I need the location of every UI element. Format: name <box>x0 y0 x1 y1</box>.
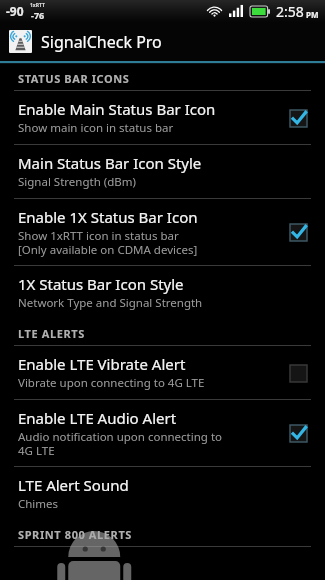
staticText: Enable Main Status Bar Icon <box>18 99 216 119</box>
staticText: 2:58 <box>276 2 304 21</box>
staticText: STATUS BAR ICONS <box>18 71 130 86</box>
button[interactable]: Enable Main Status Bar Icon <box>0 91 325 144</box>
button[interactable]: Enable LTE Audio Alert <box>0 400 325 466</box>
staticText: Signal Strength (dBm) <box>18 174 136 190</box>
staticText: Chimes <box>18 496 59 512</box>
staticText: Vibrate upon connecting to 4G LTE <box>18 375 205 391</box>
button[interactable]: LTE Alert Sound <box>0 467 325 520</box>
staticText: -76 <box>31 9 45 21</box>
staticText: Show main icon in status bar <box>18 120 174 136</box>
staticText: 1X Status Bar Icon Style <box>18 274 184 294</box>
staticText: Enable LTE Audio Alert <box>18 408 177 428</box>
staticText: LTE ALERTS <box>18 326 85 341</box>
staticText: SPRINT 800 ALERTS <box>18 527 133 542</box>
button[interactable]: Checked <box>285 219 311 245</box>
staticText: Enable 1X Status Bar Icon <box>18 207 198 227</box>
button[interactable]: Enable 1X Status Bar Icon <box>0 199 325 265</box>
button[interactable]: Unchecked <box>285 360 311 386</box>
staticText: Network Type and Signal Strength <box>18 295 203 311</box>
staticText: Audio notification upon connecting to 4G… <box>18 429 223 458</box>
button[interactable]: Checked <box>285 420 311 446</box>
staticText: SignalCheck Pro <box>41 31 162 53</box>
staticText: PM <box>306 9 319 20</box>
button[interactable]: Enable LTE Vibrate Alert <box>0 346 325 399</box>
staticText: Show 1xRTT icon in status bar [Only avai… <box>18 228 198 257</box>
staticText: -90 <box>6 3 24 19</box>
staticText: 1xRTT <box>30 2 45 9</box>
button[interactable]: 1X Status Bar Icon Style <box>0 266 325 319</box>
staticText: Enable LTE Vibrate Alert <box>18 354 186 374</box>
button[interactable]: Checked <box>285 105 311 131</box>
staticText: Main Status Bar Icon Style <box>18 153 202 173</box>
button[interactable]: Main Status Bar Icon Style <box>0 145 325 198</box>
staticText: LTE Alert Sound <box>18 475 129 495</box>
